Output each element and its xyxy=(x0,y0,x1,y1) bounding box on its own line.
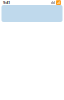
staticText: ılıl 📶 xyxy=(51,0,61,5)
staticText: 9:41 xyxy=(3,0,10,5)
